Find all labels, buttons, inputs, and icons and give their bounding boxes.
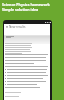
staticText: Simple solution idea: [2, 7, 39, 12]
staticText: New results: [9, 25, 26, 29]
button[interactable]: Open navigation menu: [4, 24, 50, 29]
button[interactable]: Open navigation menu: [5, 25, 8, 28]
staticText: Science Physics homework: [2, 2, 50, 7]
